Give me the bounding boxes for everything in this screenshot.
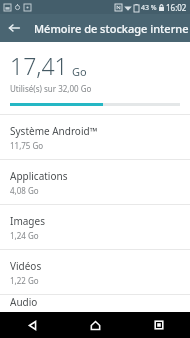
button[interactable]: Audio <box>0 295 190 312</box>
staticText: 43 % <box>141 3 157 13</box>
button[interactable]: Vidéos <box>0 250 190 294</box>
staticText: 1,22 Go <box>10 275 39 286</box>
button[interactable]: Images <box>0 205 190 249</box>
staticText: 16:02 <box>166 2 187 13</box>
button[interactable]: Système Android™ <box>0 115 190 159</box>
staticText: Utilisé(s) sur 32,00 Go <box>10 83 92 94</box>
staticText: 11,75 Go <box>10 140 44 151</box>
staticText: Vidéos <box>10 259 42 273</box>
staticText: Audio <box>10 295 38 309</box>
staticText: 4,08 Go <box>10 185 39 196</box>
button[interactable]: Applications récentes <box>127 312 190 338</box>
button[interactable]: Applications <box>0 160 190 204</box>
button[interactable]: Retour <box>0 312 64 338</box>
staticText: Mémoire de stockage interne <box>34 21 189 36</box>
staticText: 1,24 Go <box>10 230 39 241</box>
staticText: Images <box>10 214 45 228</box>
button[interactable]: Accueil <box>64 312 127 338</box>
staticText: Applications <box>10 169 68 183</box>
staticText: 17,41 <box>10 50 68 81</box>
button[interactable]: Retour <box>0 14 28 42</box>
staticText: Go <box>72 64 87 79</box>
staticText: Système Android™ <box>10 124 98 138</box>
